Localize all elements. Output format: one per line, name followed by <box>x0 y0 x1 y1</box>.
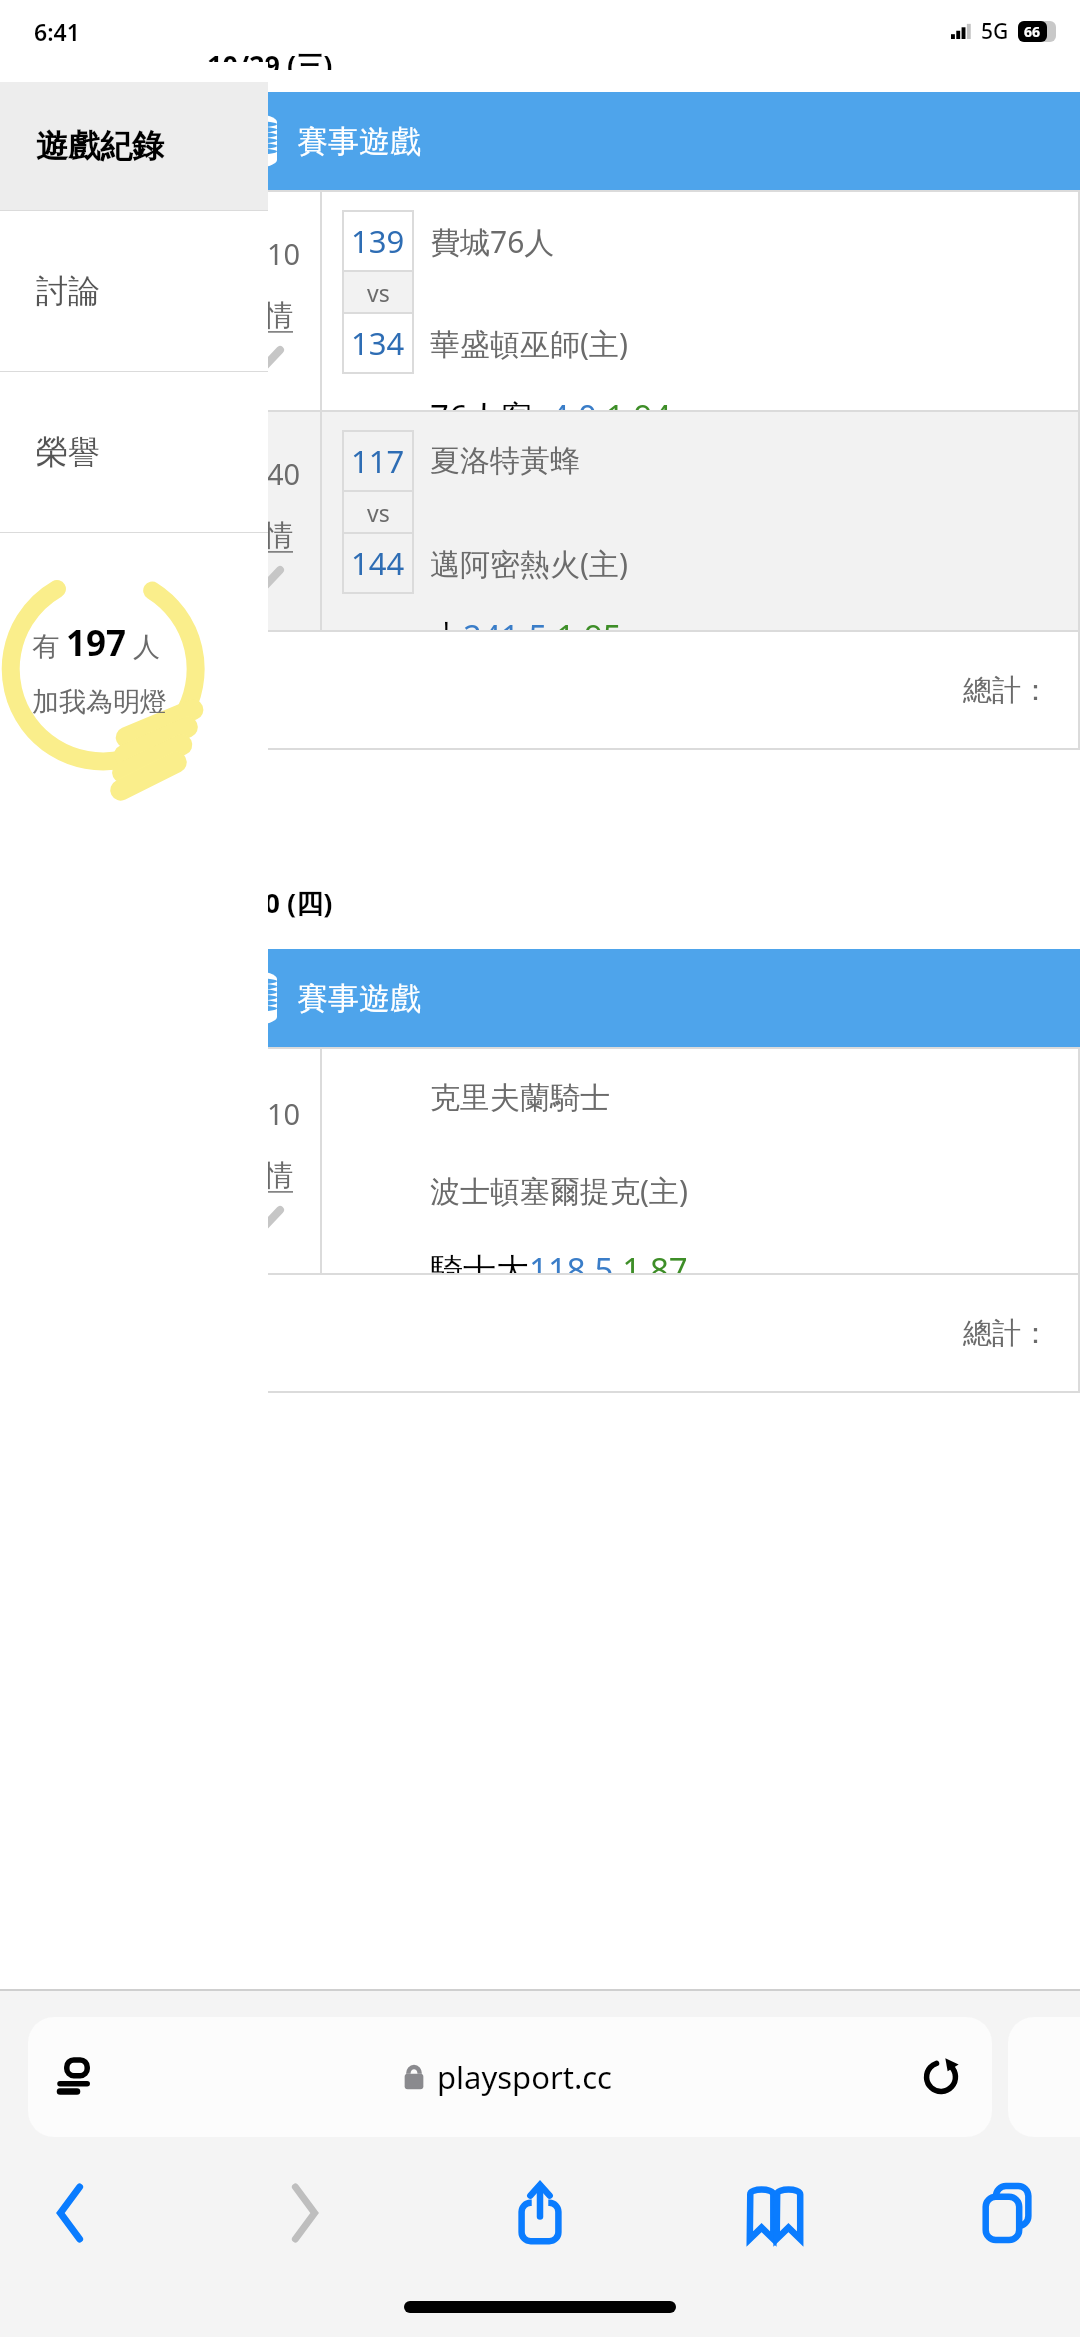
staticText: 詳情 <box>235 1157 293 1194</box>
staticText: 10/29 (三) <box>207 46 333 70</box>
staticText: 邁阿密熱火(主) <box>430 543 628 584</box>
staticText: 波士頓塞爾提克(主) <box>430 1170 688 1211</box>
staticText: 5G <box>981 17 1009 46</box>
staticText: 討論 <box>36 271 100 311</box>
other: Page settings <box>60 2060 94 2094</box>
staticText: 76人客–4.0,1.94 <box>430 394 672 410</box>
button[interactable]: Back <box>22 2165 118 2261</box>
button[interactable]: 遊戲紀錄 <box>0 82 268 210</box>
staticText: 加我為明燈 <box>32 685 167 719</box>
button[interactable]: 賽事遊戲 <box>207 92 1080 190</box>
staticText: 克里夫蘭騎士 <box>430 1079 610 1117</box>
button[interactable]: 07:10 <box>207 190 1080 410</box>
button[interactable]: Tabs <box>962 2165 1058 2261</box>
other: Reload <box>922 2058 960 2096</box>
staticText: 6:41 <box>34 16 80 47</box>
staticText: 07:10 <box>226 234 301 273</box>
staticText: 07:10 <box>226 1094 301 1133</box>
button[interactable]: Bookmarks <box>727 2165 823 2261</box>
button[interactable]: 07:40 <box>207 410 1080 630</box>
staticText: vs <box>367 497 390 528</box>
staticText: 詳情 <box>235 517 293 554</box>
staticText: playsport.cc <box>437 2056 612 2098</box>
button[interactable]: 討論 <box>0 211 268 371</box>
staticText: 華盛頓巫師(主) <box>430 323 628 364</box>
staticText: 139 <box>351 220 405 262</box>
staticText: 66 <box>1024 22 1041 41</box>
button[interactable]: Forward <box>257 2165 353 2261</box>
staticText: 134 <box>351 322 405 364</box>
staticText: 賽事遊戲 <box>297 979 421 1018</box>
staticText: 賽事遊戲 <box>297 122 421 161</box>
staticText: 詳情 <box>235 297 293 334</box>
staticText: 遊戲紀錄 <box>36 126 164 166</box>
staticText: 總計： <box>963 672 1050 709</box>
staticText: 144 <box>351 542 405 584</box>
staticText: 費城76人 <box>430 221 555 262</box>
staticText: vs <box>367 277 390 308</box>
button[interactable]: 07:10 <box>207 1047 1080 1273</box>
button[interactable]: Page settings <box>28 2017 992 2137</box>
button[interactable]: 賽事遊戲 <box>207 949 1080 1047</box>
staticText: 有 197 人 <box>32 619 161 667</box>
staticText: 10/30 (四) <box>207 884 333 921</box>
button[interactable]: 榮譽 <box>0 372 268 532</box>
staticText: 117 <box>351 440 405 482</box>
staticText: 大241.5,1.95 <box>430 614 622 630</box>
button[interactable]: Share <box>492 2165 588 2261</box>
staticText: 夏洛特黃蜂 <box>430 442 580 480</box>
staticText: 榮譽 <box>36 432 100 472</box>
staticText: 總計： <box>963 1315 1050 1352</box>
staticText: 騎士大118.5,1.87 <box>430 1247 688 1273</box>
staticText: 07:40 <box>226 454 301 493</box>
